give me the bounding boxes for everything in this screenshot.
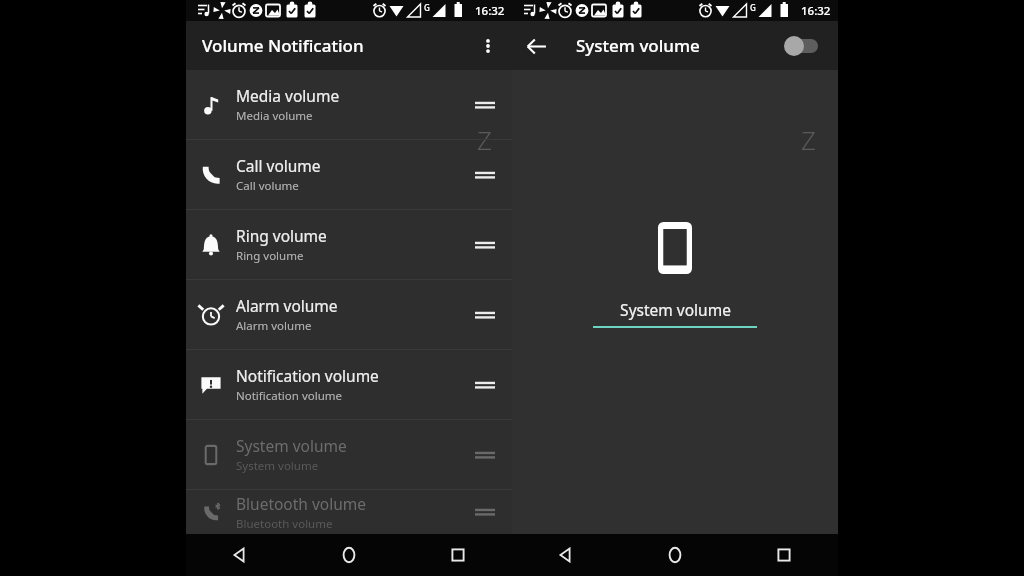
button[interactable]: Alarm volume xyxy=(186,280,512,349)
staticText: Bluetooth volume xyxy=(236,493,367,514)
staticText: 16:32 xyxy=(801,3,831,19)
button[interactable]: System volume xyxy=(186,420,512,489)
button[interactable]: System volume xyxy=(593,299,757,328)
staticText: Z xyxy=(801,122,816,157)
button[interactable]: Call volume xyxy=(186,140,512,209)
button[interactable]: Ring volume xyxy=(186,210,512,279)
button[interactable]: Recents xyxy=(403,534,512,576)
button[interactable]: Home xyxy=(620,534,729,576)
staticText: Volume Notification xyxy=(202,34,364,57)
staticText: Z xyxy=(477,122,492,157)
button[interactable]: Back xyxy=(512,534,620,576)
staticText: G xyxy=(750,2,756,13)
staticText: Call volume xyxy=(236,178,299,194)
staticText: System volume xyxy=(236,435,347,456)
staticText: 16:32 xyxy=(475,3,505,19)
staticText: Alarm volume xyxy=(236,295,338,316)
button[interactable]: Home xyxy=(294,534,403,576)
staticText: System volume xyxy=(576,34,700,57)
button[interactable]: Back xyxy=(512,22,560,70)
staticText: G xyxy=(424,2,430,13)
staticText: Ring volume xyxy=(236,248,304,264)
button[interactable]: More options xyxy=(464,22,512,70)
staticText: Notification volume xyxy=(236,365,379,386)
button[interactable]: Media volume xyxy=(186,70,512,139)
staticText: Ring volume xyxy=(236,225,327,246)
button[interactable]: Recents xyxy=(729,534,838,576)
button[interactable]: Toggle system volume xyxy=(784,32,824,60)
staticText: System volume xyxy=(620,299,731,320)
staticText: Notification volume xyxy=(236,388,342,404)
staticText: Media volume xyxy=(236,108,313,124)
staticText: Media volume xyxy=(236,85,340,106)
button[interactable]: Bluetooth volume xyxy=(186,490,512,534)
button[interactable]: Back xyxy=(186,534,294,576)
staticText: Bluetooth volume xyxy=(236,516,333,532)
staticText: Call volume xyxy=(236,155,321,176)
staticText: System volume xyxy=(236,458,319,474)
staticText: Alarm volume xyxy=(236,318,312,334)
button[interactable]: Notification volume xyxy=(186,350,512,419)
